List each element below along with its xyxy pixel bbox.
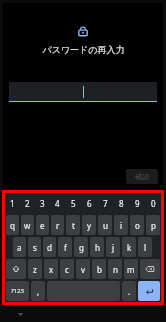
button[interactable]: Enter [138, 281, 160, 301]
button[interactable]: v [76, 259, 90, 279]
button[interactable]: 0 [145, 193, 161, 214]
staticText: 5 [71, 198, 76, 209]
staticText: 6 [87, 198, 92, 209]
staticText: r [56, 220, 60, 231]
button[interactable]: i [114, 215, 128, 235]
button[interactable]: c [60, 259, 74, 279]
button[interactable]: f [58, 237, 72, 257]
staticText: s [33, 242, 37, 253]
staticText: 8 [119, 198, 124, 209]
staticText: v [81, 264, 86, 275]
button[interactable]: , [31, 281, 45, 301]
staticText: , [37, 286, 40, 297]
button[interactable]: m [124, 259, 138, 279]
button[interactable]: n [108, 259, 122, 279]
staticText: h [95, 242, 100, 253]
staticText: 3 [40, 198, 45, 209]
staticText: q [10, 220, 15, 231]
button[interactable]: x [44, 259, 58, 279]
button[interactable]: 8 [113, 193, 129, 214]
staticText: m [127, 264, 135, 275]
button[interactable]: 4 [50, 193, 65, 214]
staticText: t [72, 220, 75, 231]
other: Shift [12, 265, 20, 273]
staticText: p [151, 220, 156, 231]
staticText: 2 [25, 198, 30, 209]
other: Lock [76, 24, 90, 38]
staticText: z [33, 264, 37, 275]
staticText: b [97, 264, 102, 275]
staticText: a [17, 242, 22, 253]
button[interactable]: w [21, 215, 34, 235]
button[interactable]: e [36, 215, 49, 235]
staticText: 1 [10, 198, 15, 209]
staticText: i [120, 220, 123, 231]
button[interactable]: p [146, 215, 160, 235]
button[interactable]: l [138, 237, 152, 257]
button[interactable]: d [43, 237, 56, 257]
staticText: u [103, 220, 108, 231]
other: Backspace [145, 264, 155, 274]
button[interactable]: 5 [65, 193, 81, 214]
button[interactable]: j [106, 237, 120, 257]
button[interactable]: q [6, 215, 19, 235]
button[interactable]: 確認 [126, 169, 158, 184]
button[interactable]: Shift [6, 259, 26, 279]
button[interactable]: 6 [81, 193, 97, 214]
button[interactable]: k [122, 237, 136, 257]
staticText: w [24, 220, 31, 231]
staticText: k [127, 242, 132, 253]
button[interactable]: 2 [20, 193, 35, 214]
staticText: 7 [103, 198, 108, 209]
staticText: 4 [55, 198, 60, 209]
staticText: j [112, 242, 115, 253]
staticText: ?123 [11, 287, 24, 295]
button[interactable]: . [122, 281, 136, 301]
button[interactable]: Backspace [140, 259, 160, 279]
staticText: g [79, 242, 84, 253]
button[interactable]: h [90, 237, 104, 257]
staticText: n [113, 264, 118, 275]
staticText: c [65, 264, 69, 275]
staticText: e [40, 220, 45, 231]
staticText: x [49, 264, 54, 275]
button[interactable]: s [28, 237, 41, 257]
staticText: l [144, 242, 147, 253]
button[interactable]: g [74, 237, 88, 257]
button[interactable]: 1 [5, 193, 20, 214]
button[interactable]: 9 [129, 193, 145, 214]
button[interactable]: a [13, 237, 26, 257]
staticText: 9 [135, 198, 140, 209]
staticText: o [135, 220, 140, 231]
staticText: y [87, 220, 92, 231]
button[interactable]: b [92, 259, 106, 279]
button[interactable]: u [98, 215, 112, 235]
staticText: 0 [151, 198, 156, 209]
button[interactable]: y [82, 215, 96, 235]
staticText: d [47, 242, 52, 253]
staticText: . [128, 286, 131, 297]
staticText: 確認 [135, 172, 149, 181]
button[interactable]: ?123 [6, 281, 29, 301]
button[interactable]: o [130, 215, 144, 235]
staticText: パスワードの再入力 [42, 44, 125, 55]
other: Enter [145, 287, 154, 296]
button[interactable]: 7 [97, 193, 113, 214]
button[interactable] [9, 82, 157, 101]
button[interactable]: Hide keyboard [14, 308, 26, 320]
staticText: f [64, 242, 67, 253]
button[interactable]: 3 [35, 193, 50, 214]
button[interactable]: z [28, 259, 42, 279]
button[interactable]: r [51, 215, 64, 235]
button[interactable]: t [66, 215, 80, 235]
